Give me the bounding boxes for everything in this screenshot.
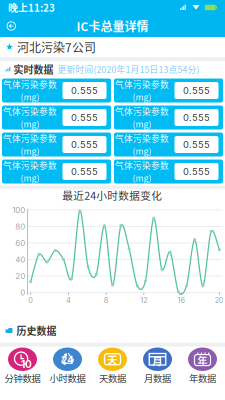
staticText: 最近24小时数据变化	[62, 187, 162, 203]
button[interactable]: 月	[135, 347, 180, 382]
staticText: 气体污染参数	[3, 132, 57, 144]
staticText: 20	[215, 296, 224, 305]
staticText: (mg)	[132, 144, 151, 157]
staticText: 月数据	[144, 371, 171, 385]
staticText: 24	[61, 354, 74, 366]
staticText: (mg)	[20, 171, 39, 184]
staticText: 0.555	[183, 112, 210, 123]
staticText: 0.555	[71, 139, 98, 150]
staticText: 0	[20, 288, 25, 297]
staticText: 年	[197, 353, 207, 368]
staticText: 气体污染参数	[115, 159, 169, 171]
staticText: 20	[15, 271, 25, 281]
staticText: 天	[107, 351, 118, 367]
staticText: (mg)	[132, 171, 151, 184]
staticText: 0.555	[183, 139, 210, 150]
staticText: 4	[66, 296, 71, 305]
staticText: 晚上11:23	[8, 0, 55, 15]
staticText: (mg)	[132, 90, 151, 103]
staticText: 小时数据	[49, 371, 85, 385]
staticText: IC卡总量详情	[76, 17, 148, 35]
staticText: 12	[140, 296, 147, 305]
staticText: 气体污染参数	[115, 78, 169, 90]
staticText: 天数据	[99, 371, 126, 385]
staticText: 40	[15, 255, 25, 264]
staticText: 0.555	[183, 85, 210, 96]
staticText: 气体污染参数	[3, 159, 57, 171]
staticText: 8	[104, 296, 109, 305]
staticText: (mg)	[132, 117, 151, 130]
button[interactable]: 24	[45, 347, 90, 382]
button[interactable]: 10	[0, 347, 45, 382]
staticText: 0.555	[71, 85, 98, 96]
button[interactable]: 返回	[0, 15, 23, 37]
staticText: 河北污染7公司	[17, 38, 96, 56]
button[interactable]: 天	[90, 347, 135, 382]
staticText: 0.555	[183, 166, 210, 177]
staticText: (mg)	[20, 117, 39, 130]
button[interactable]: 年	[180, 347, 225, 382]
staticText: 月	[152, 353, 163, 368]
staticText: 气体污染参数	[3, 78, 57, 90]
staticText: 历史数据	[16, 323, 56, 338]
staticText: 100	[12, 205, 25, 215]
staticText: 气体污染参数	[3, 105, 57, 117]
staticText: 80	[15, 222, 25, 231]
staticText: 年数据	[189, 371, 216, 385]
staticText: 0.555	[71, 112, 98, 123]
staticText: 16	[178, 296, 186, 305]
staticText: 气体污染参数	[115, 132, 169, 144]
staticText: 更新时间(2020年1月15日13点54分)	[58, 63, 200, 75]
staticText: 分钟数据	[4, 371, 40, 385]
staticText: (mg)	[20, 144, 39, 157]
staticText: 0.555	[71, 166, 98, 177]
staticText: (mg)	[20, 90, 39, 103]
staticText: 10	[21, 358, 32, 370]
staticText: 60	[15, 238, 25, 248]
staticText: 实时数据	[14, 62, 54, 76]
staticText: 0	[28, 296, 33, 305]
staticText: 气体污染参数	[115, 105, 169, 117]
